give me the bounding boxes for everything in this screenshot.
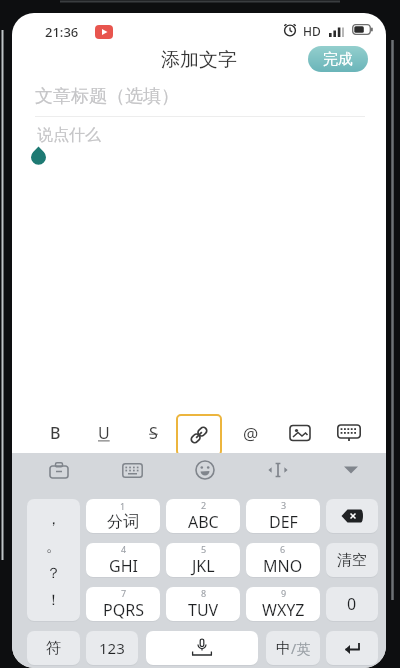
button[interactable]: [39, 452, 79, 488]
button[interactable]: [112, 452, 152, 488]
button[interactable]: [326, 631, 378, 665]
staticText: 。: [46, 537, 61, 556]
staticText: 清空: [337, 551, 367, 570]
staticText: MNO: [263, 555, 303, 577]
staticText: PQRS: [103, 599, 144, 621]
staticText: U: [98, 422, 110, 444]
button[interactable]: [326, 499, 378, 533]
button[interactable]: 6: [246, 543, 320, 577]
staticText: 3: [281, 499, 287, 511]
button[interactable]: @: [231, 413, 271, 453]
staticText: DEF: [269, 511, 298, 533]
staticText: ！: [46, 591, 61, 610]
button[interactable]: [329, 413, 369, 453]
staticText: 2: [201, 499, 207, 511]
staticText: 21:36: [45, 23, 79, 41]
button[interactable]: 0: [326, 587, 378, 621]
staticText: TUV: [188, 599, 219, 621]
staticText: 123: [99, 638, 125, 658]
staticText: 9: [281, 587, 287, 599]
staticText: 文章标题（选填）: [35, 85, 179, 108]
button[interactable]: ，: [27, 499, 80, 621]
staticText: JKL: [192, 555, 215, 577]
staticText: B: [50, 422, 61, 444]
staticText: HD: [303, 23, 321, 39]
staticText: 完成: [323, 50, 353, 69]
staticText: 添加文字: [161, 48, 237, 72]
staticText: 5: [201, 543, 207, 555]
button[interactable]: 完成: [308, 46, 368, 72]
button[interactable]: [280, 413, 320, 453]
staticText: 6: [280, 543, 286, 555]
staticText: 4: [121, 543, 127, 555]
staticText: 说点什么: [37, 125, 101, 145]
button[interactable]: B: [35, 413, 75, 453]
staticText: 8: [201, 587, 207, 599]
button[interactable]: U: [84, 413, 124, 453]
staticText: 符: [46, 639, 61, 658]
button[interactable]: [258, 452, 298, 488]
staticText: 中: [276, 639, 291, 658]
button[interactable]: [176, 414, 222, 456]
button[interactable]: 8: [166, 587, 240, 621]
button[interactable]: 123: [86, 631, 138, 665]
staticText: 7: [121, 587, 127, 599]
button[interactable]: 5: [166, 543, 240, 577]
staticText: 分词: [107, 512, 139, 532]
staticText: GHI: [109, 555, 138, 577]
button[interactable]: 4: [86, 543, 160, 577]
staticText: WXYZ: [262, 599, 305, 621]
staticText: @: [243, 422, 259, 445]
staticText: /英: [291, 639, 311, 658]
staticText: 1: [120, 500, 126, 512]
button[interactable]: 1: [86, 499, 160, 533]
button[interactable]: [185, 452, 225, 488]
button[interactable]: [146, 631, 258, 665]
staticText: 0: [347, 593, 357, 615]
button[interactable]: 3: [246, 499, 320, 533]
button[interactable]: 7: [86, 587, 160, 621]
button[interactable]: 符: [27, 631, 80, 665]
staticText: ABC: [188, 511, 219, 533]
staticText: S: [149, 422, 158, 444]
button[interactable]: S: [133, 413, 173, 453]
staticText: ，: [46, 510, 61, 529]
button[interactable]: 中: [266, 631, 320, 665]
button[interactable]: 2: [166, 499, 240, 533]
staticText: ？: [46, 564, 61, 583]
button[interactable]: [331, 452, 371, 488]
button[interactable]: 9: [246, 587, 320, 621]
button[interactable]: 清空: [326, 543, 378, 577]
